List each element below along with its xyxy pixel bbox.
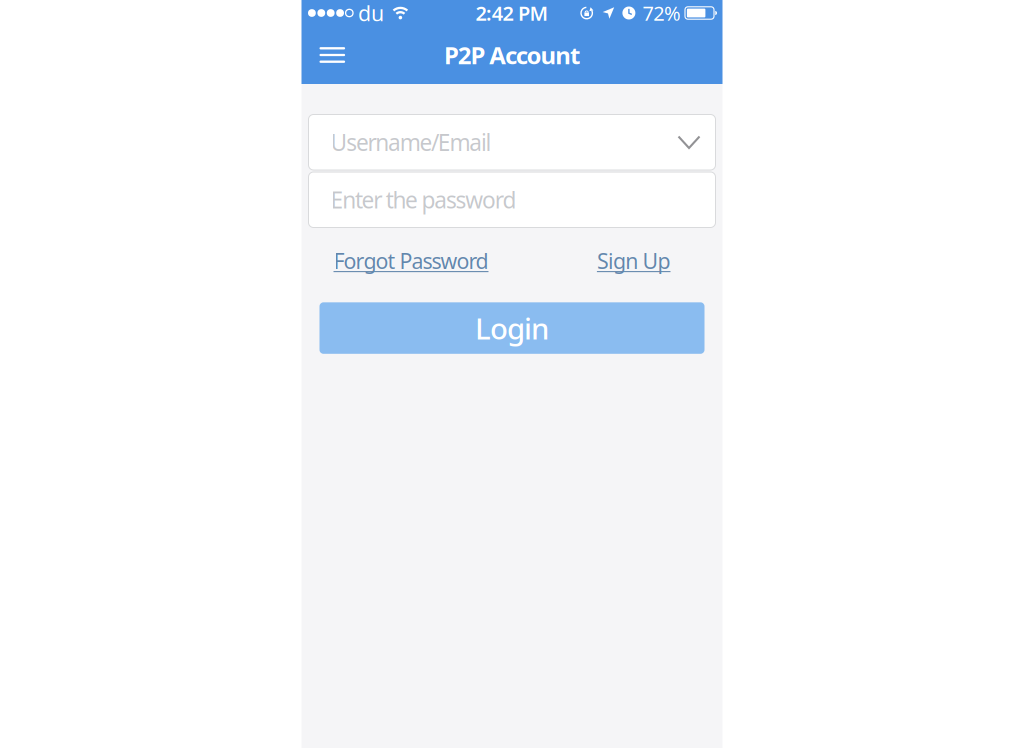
button[interactable]: Login [319,302,704,354]
staticText: Login [475,309,549,348]
staticText: du [358,0,384,27]
staticText: P2P Account [444,39,580,71]
staticText: Sign Up [597,246,670,275]
staticText: 72% [643,0,681,26]
staticText: Forgot Password [333,246,488,275]
button[interactable]: Sign Up [597,246,670,275]
button[interactable]: Forgot Password [333,246,488,275]
staticText: 2:42 PM [475,0,549,26]
button[interactable]: Username/Email [308,114,715,170]
button[interactable]: Enter the password [308,172,715,227]
staticText: Enter the password [330,185,516,215]
staticText: Username/Email [330,127,492,157]
button[interactable]: Menu [301,37,345,73]
